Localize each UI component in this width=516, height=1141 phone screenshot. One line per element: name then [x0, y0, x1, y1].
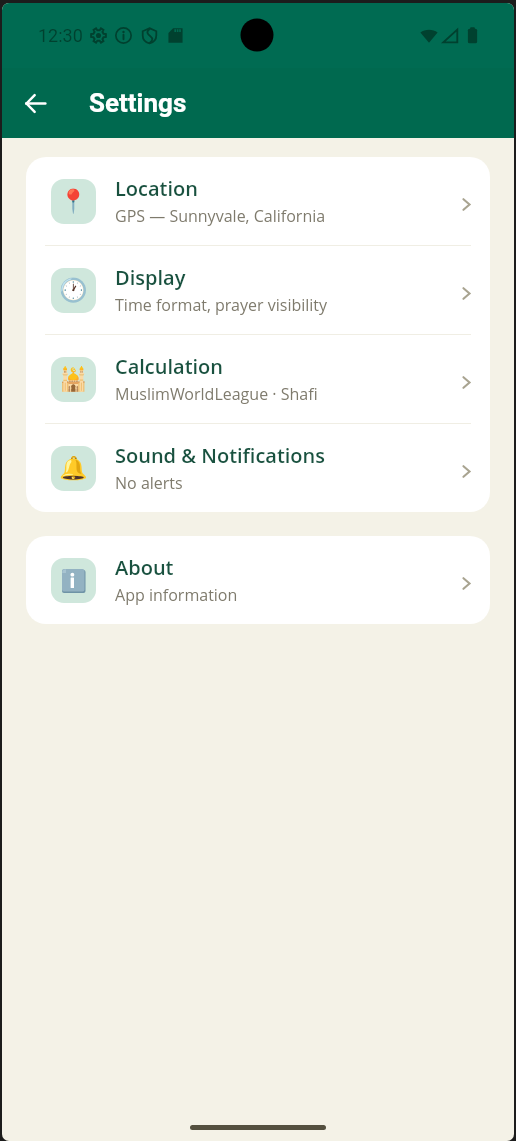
- staticText: 🕐: [59, 277, 88, 304]
- button[interactable]: About: [26, 536, 490, 624]
- staticText: Time format, prayer visibility: [115, 294, 328, 316]
- staticText: 12:30: [38, 25, 83, 46]
- staticText: 🕌: [59, 366, 88, 393]
- button[interactable]: Back: [12, 80, 58, 126]
- staticText: 📍: [59, 188, 88, 215]
- staticText: GPS — Sunnyvale, California: [115, 205, 326, 227]
- button[interactable]: 📍: [26, 157, 490, 245]
- staticText: App information: [115, 584, 238, 606]
- button[interactable]: 🕐: [26, 246, 490, 334]
- staticText: Sound & Notifications: [115, 442, 326, 469]
- staticText: Location: [115, 175, 198, 202]
- staticText: 🔔: [59, 455, 88, 482]
- staticText: Calculation: [115, 353, 223, 380]
- button[interactable]: 🕌: [26, 335, 490, 423]
- button[interactable]: 🔔: [26, 424, 490, 512]
- staticText: About: [115, 554, 174, 581]
- staticText: No alerts: [115, 472, 183, 494]
- staticText: MuslimWorldLeague · Shafi: [115, 383, 318, 405]
- staticText: Settings: [89, 88, 187, 118]
- staticText: Display: [115, 264, 186, 291]
